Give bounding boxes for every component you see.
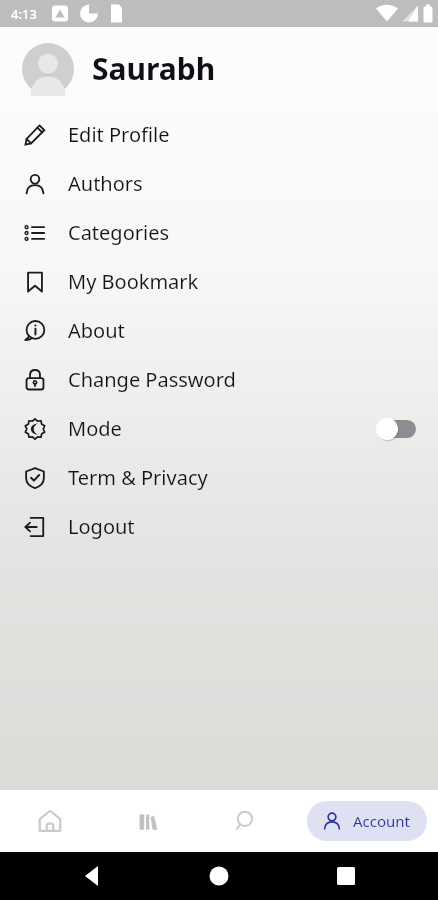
staticText: Saurabh — [92, 48, 216, 89]
staticText: Categories — [68, 219, 170, 246]
staticText: Logout — [68, 513, 135, 540]
staticText: Account — [353, 811, 411, 831]
staticText: Mode — [68, 415, 122, 442]
staticText: 4:13 — [11, 5, 37, 23]
button[interactable]: Account — [307, 801, 427, 841]
button[interactable]: Authors — [0, 159, 438, 208]
button[interactable]: Home — [0, 790, 99, 852]
staticText: Edit Profile — [68, 121, 170, 148]
button[interactable]: Change Password — [0, 355, 438, 404]
button[interactable]: Library — [99, 790, 197, 852]
button[interactable]: Categories — [0, 208, 438, 257]
button[interactable]: Mode — [0, 404, 438, 453]
staticText: Change Password — [68, 366, 236, 393]
button[interactable]: Search — [197, 790, 295, 852]
staticText: My Bookmark — [68, 268, 199, 295]
button[interactable]: Dark mode toggle — [376, 418, 416, 440]
button[interactable]: Edit Profile — [0, 110, 438, 159]
staticText: Authors — [68, 170, 143, 197]
button[interactable]: Saurabh — [0, 27, 438, 110]
staticText: About — [68, 317, 125, 344]
staticText: Term & Privacy — [68, 464, 208, 491]
button[interactable]: My Bookmark — [0, 257, 438, 306]
button[interactable]: Term & Privacy — [0, 453, 438, 502]
button[interactable]: Logout — [0, 502, 438, 551]
button[interactable]: About — [0, 306, 438, 355]
